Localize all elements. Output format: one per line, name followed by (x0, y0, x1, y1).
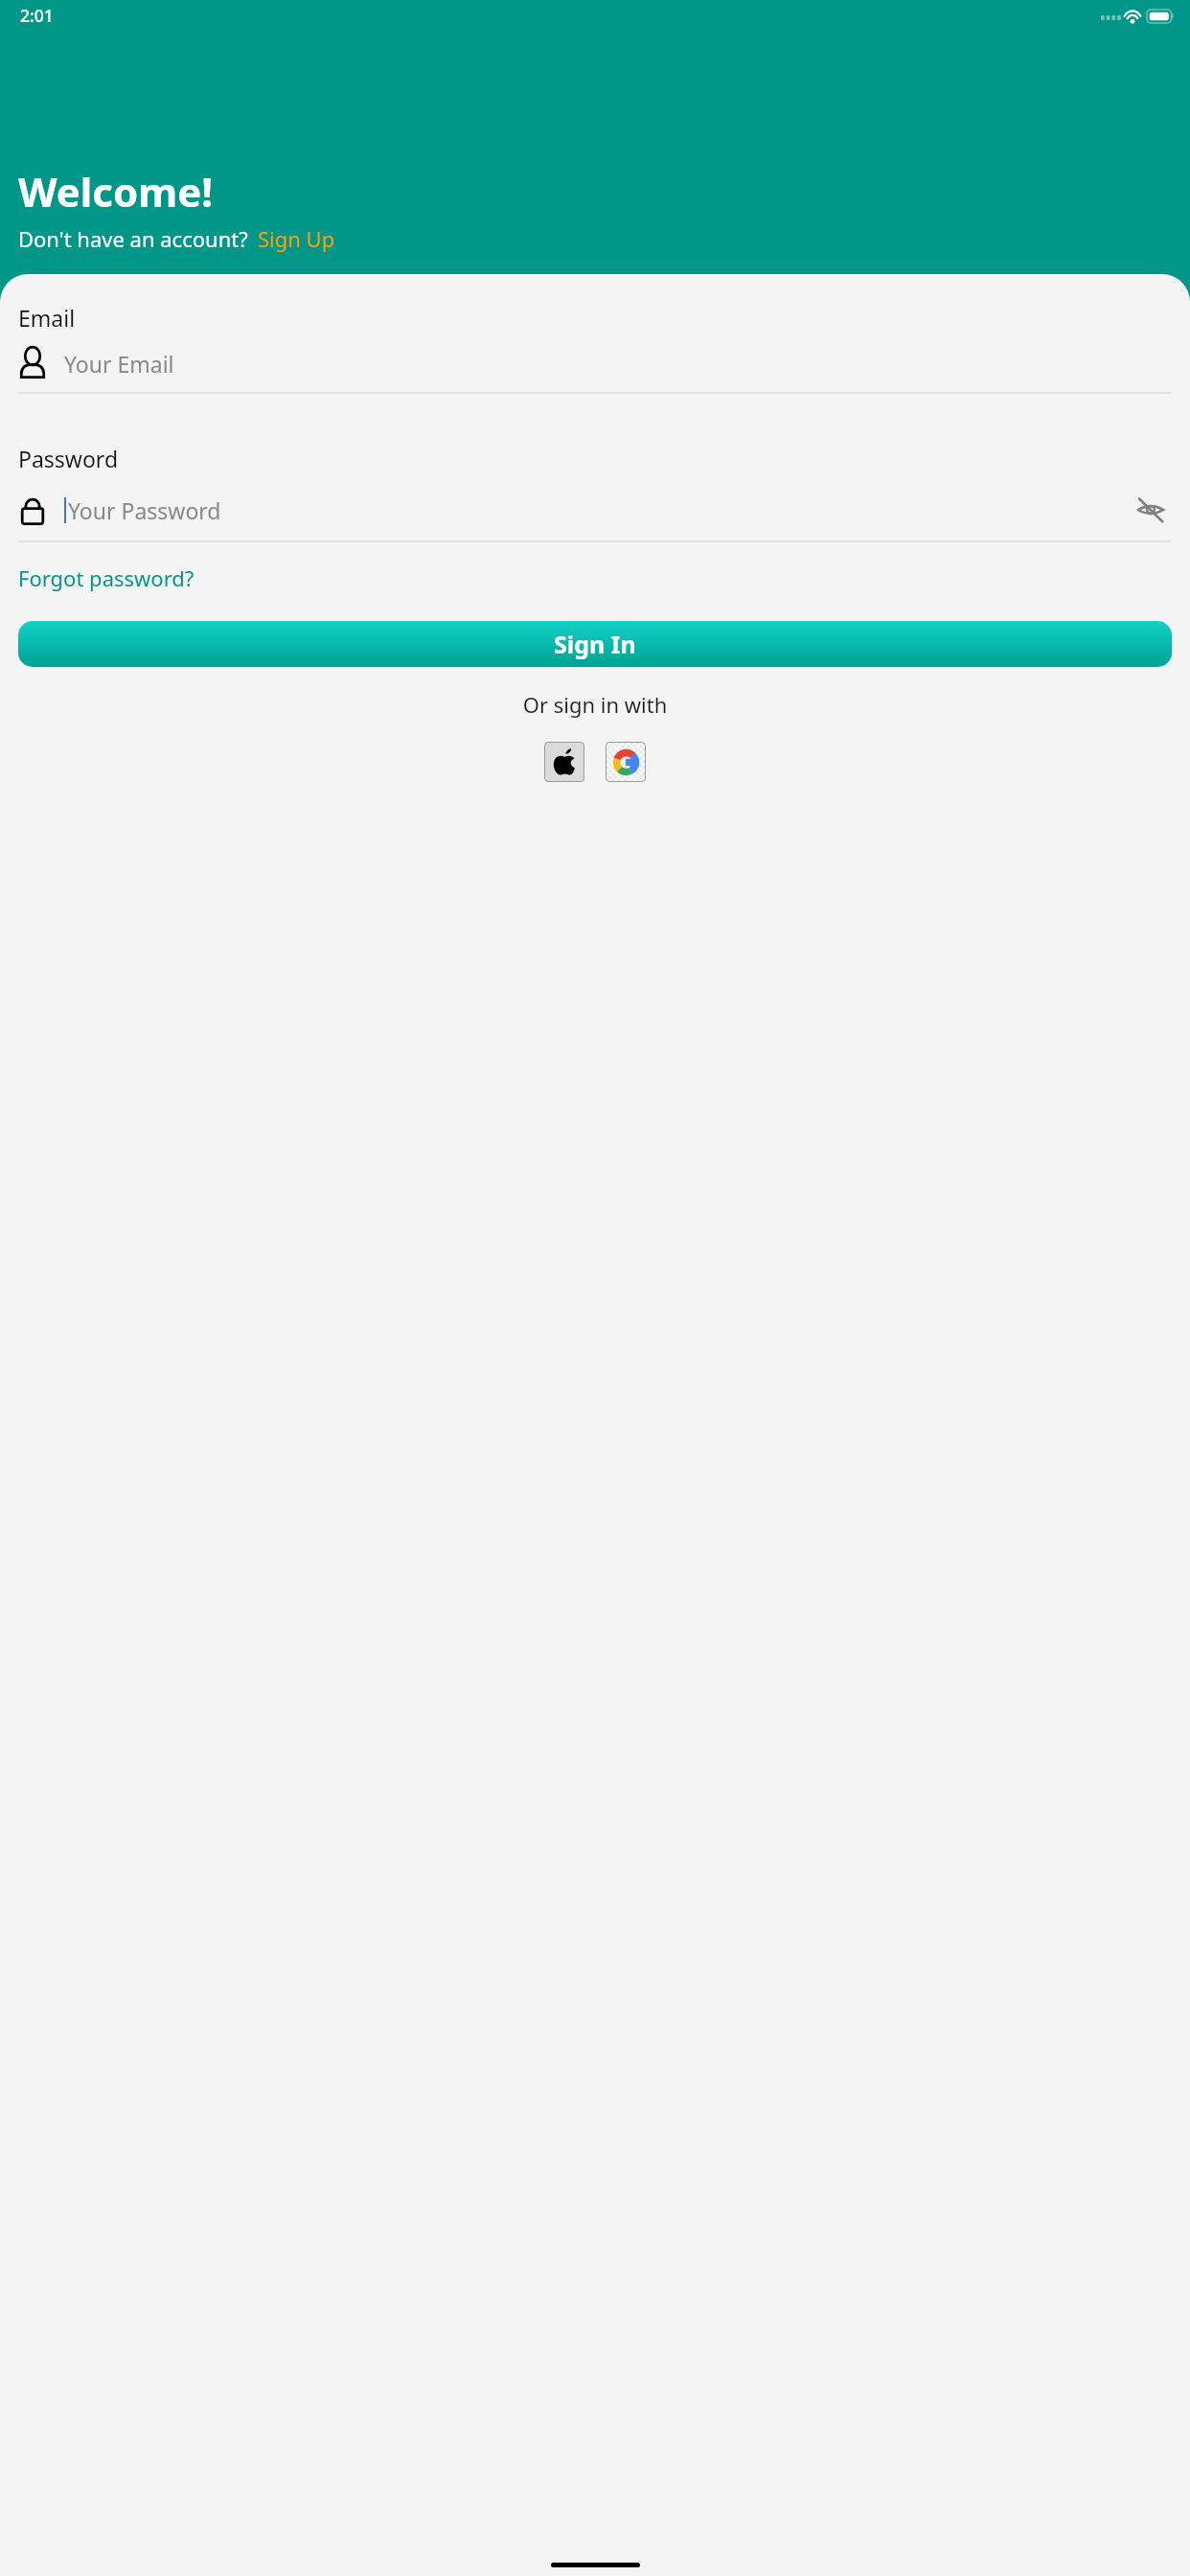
button[interactable]: Your Email (18, 348, 1172, 379)
staticText: Password (18, 444, 119, 473)
staticText: Forgot password? (18, 563, 195, 592)
button[interactable]: Sign Up (258, 224, 335, 253)
button[interactable]: Forgot password? (18, 563, 195, 592)
staticText: Your Password (68, 495, 1130, 525)
staticText: Email (18, 303, 76, 333)
staticText: Or sign in with (18, 690, 1172, 719)
button[interactable]: Sign In (18, 621, 1172, 667)
button[interactable]: Show password (1130, 489, 1172, 531)
staticText: Don't have an account? (18, 224, 248, 253)
staticText: 2:01 (20, 4, 54, 27)
staticText: Sign Up (258, 224, 335, 253)
staticText: Your Email (64, 349, 174, 379)
staticText: Sign In (554, 628, 636, 660)
staticText: Welcome! (18, 164, 214, 218)
button[interactable]: Sign in with Apple (544, 742, 584, 782)
button[interactable]: Sign in with Google (606, 742, 646, 782)
button[interactable]: Your Password (18, 489, 1172, 531)
